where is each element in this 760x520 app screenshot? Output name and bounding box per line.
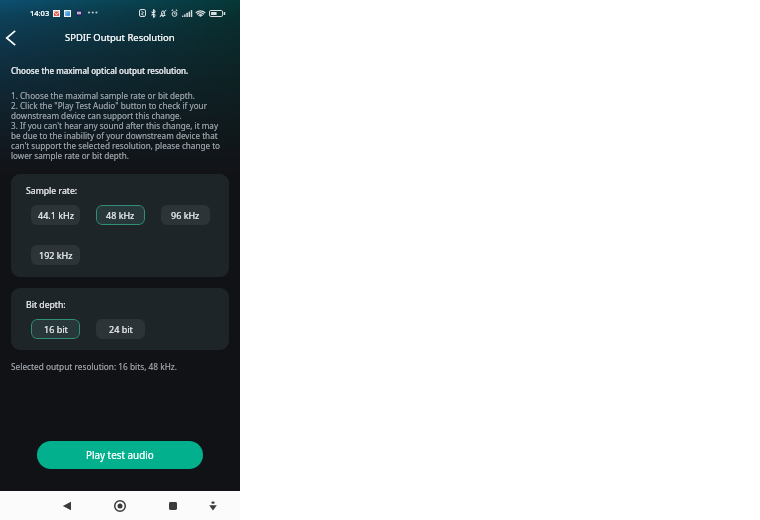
staticText: 24 bit xyxy=(109,323,133,335)
button[interactable]: Recent apps xyxy=(162,495,184,517)
staticText: SPDIF Output Resolution xyxy=(65,31,175,44)
staticText: Choose the maximal optical output resolu… xyxy=(11,65,189,76)
button[interactable]: Hide navigation bar xyxy=(202,495,224,517)
button[interactable]: 48 kHz xyxy=(96,205,145,225)
button[interactable]: 96 kHz xyxy=(161,205,210,225)
button[interactable]: 44.1 kHz xyxy=(31,205,80,225)
staticText: 14:03 xyxy=(30,8,50,18)
staticText: 16 bit xyxy=(44,323,68,335)
staticText: 96 kHz xyxy=(171,209,200,221)
staticText: Sample rate: xyxy=(26,185,78,197)
staticText: Play test audio xyxy=(86,448,154,461)
staticText: 1. Choose the maximal sample rate or bit… xyxy=(11,90,221,161)
staticText: Bit depth: xyxy=(26,299,66,311)
staticText: 44.1 kHz xyxy=(38,209,74,221)
staticText: Selected output resolution: 16 bits, 48 … xyxy=(11,361,177,372)
button[interactable]: 24 bit xyxy=(96,319,145,339)
button[interactable]: 192 kHz xyxy=(31,245,80,265)
button[interactable]: 16 bit xyxy=(31,319,80,339)
button[interactable]: Back xyxy=(0,25,23,51)
staticText: 192 kHz xyxy=(39,249,73,261)
button[interactable]: Home xyxy=(109,495,131,517)
staticText: 48 kHz xyxy=(106,209,135,221)
button[interactable]: Back xyxy=(56,495,78,517)
button[interactable]: Play test audio xyxy=(37,441,203,469)
